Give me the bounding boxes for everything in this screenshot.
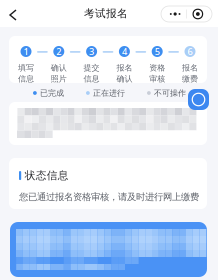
staticText: 缴费 xyxy=(182,74,198,84)
staticText: 资格 xyxy=(149,63,165,73)
staticText: 4 xyxy=(122,45,127,58)
button[interactable]: 更多 xyxy=(164,6,186,21)
staticText: 正在进行 xyxy=(93,88,125,98)
staticText: 确认 xyxy=(116,74,132,84)
staticText: 不可操作 xyxy=(154,88,186,98)
button[interactable]: 关闭 xyxy=(187,6,209,21)
staticText: 6 xyxy=(187,45,192,58)
staticText: 您已通过报名资格审核，请及时进行网上缴费 xyxy=(19,191,199,203)
staticText: 3 xyxy=(89,45,94,58)
staticText: 审核 xyxy=(149,74,165,84)
staticText: 1 xyxy=(23,45,28,58)
button[interactable] xyxy=(10,222,207,277)
staticText: 5 xyxy=(155,45,160,58)
staticText: 确认 xyxy=(51,63,67,73)
staticText: 照片 xyxy=(51,74,67,84)
staticText: 信息 xyxy=(18,74,34,84)
staticText: 状态信息 xyxy=(25,169,69,182)
staticText: 填写 xyxy=(18,63,34,73)
staticText: 2 xyxy=(56,45,61,58)
staticText: 考试报名 xyxy=(84,7,128,20)
button[interactable]: 返回 xyxy=(5,7,31,23)
staticText: 已完成 xyxy=(40,88,64,98)
staticText: 报名 xyxy=(182,63,198,73)
button[interactable]: Customer service xyxy=(188,89,209,110)
staticText: 报名 xyxy=(116,63,132,73)
staticText: 提交 xyxy=(84,63,100,73)
staticText: 信息 xyxy=(84,74,100,84)
